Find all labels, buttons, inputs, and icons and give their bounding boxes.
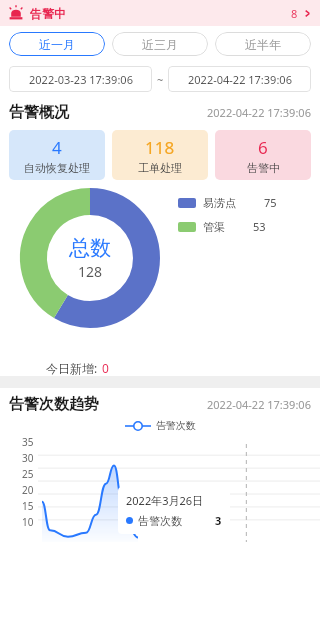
staticText: 53 bbox=[253, 219, 266, 234]
staticText: 易涝点 bbox=[203, 196, 236, 210]
staticText: 2022-04-22 17:39:06 bbox=[188, 72, 292, 87]
staticText: 2022年3月26日 bbox=[126, 493, 204, 508]
button[interactable]: 6 bbox=[215, 130, 311, 180]
staticText: 2022-04-22 17:39:06 bbox=[207, 105, 311, 120]
staticText: 告警中 bbox=[247, 161, 280, 175]
staticText: 2022-04-22 17:39:06 bbox=[207, 397, 311, 412]
staticText: 告警中 bbox=[30, 6, 66, 21]
staticText: 75 bbox=[264, 195, 277, 210]
button[interactable]: 4 bbox=[9, 130, 105, 180]
staticText: 近三月 bbox=[142, 37, 178, 52]
staticText: 告警概况 bbox=[9, 103, 69, 122]
button[interactable]: 2022-03-23 17:39:06 bbox=[9, 66, 152, 92]
staticText: 2022-03-23 17:39:06 bbox=[29, 72, 133, 87]
staticText: 告警次数 bbox=[156, 419, 196, 432]
staticText: 总数 bbox=[69, 235, 111, 261]
staticText: 近一月 bbox=[39, 37, 75, 52]
staticText: 3 bbox=[215, 513, 222, 528]
staticText: 4 bbox=[52, 136, 62, 159]
staticText: 今日新增: bbox=[46, 360, 98, 376]
staticText: 15 bbox=[22, 499, 34, 513]
staticText: 10 bbox=[22, 515, 34, 529]
staticText: 20 bbox=[22, 483, 34, 497]
staticText: 30 bbox=[22, 451, 34, 465]
staticText: 128 bbox=[78, 262, 103, 281]
staticText: 118 bbox=[145, 136, 175, 159]
staticText: 6 bbox=[258, 136, 268, 159]
staticText: 告警次数趋势 bbox=[9, 395, 99, 414]
button[interactable]: 118 bbox=[112, 130, 208, 180]
button[interactable]: 近半年 bbox=[215, 32, 311, 56]
staticText: 8 bbox=[291, 6, 298, 21]
button[interactable]: 2022-04-22 17:39:06 bbox=[168, 66, 311, 92]
staticText: 25 bbox=[22, 467, 34, 481]
staticText: 告警次数 bbox=[138, 514, 182, 528]
staticText: 近半年 bbox=[245, 37, 281, 52]
button[interactable]: 近一月 bbox=[9, 32, 105, 56]
staticText: 0 bbox=[102, 360, 109, 376]
staticText: 管渠 bbox=[203, 220, 225, 234]
button[interactable]: 近三月 bbox=[112, 32, 208, 56]
staticText: 自动恢复处理 bbox=[24, 161, 90, 175]
button[interactable]: 告警中 bbox=[0, 0, 320, 26]
staticText: 35 bbox=[22, 435, 34, 449]
staticText: ~ bbox=[157, 72, 164, 87]
staticText: 工单处理 bbox=[138, 161, 182, 175]
